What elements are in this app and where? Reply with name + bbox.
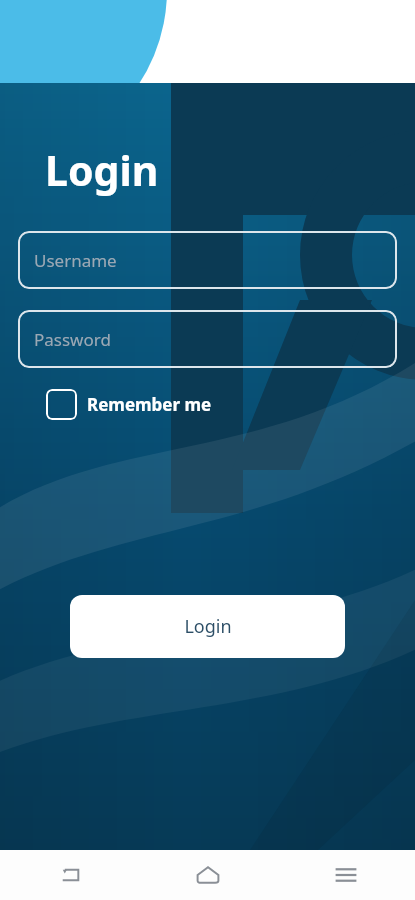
staticText: Login — [184, 614, 232, 639]
button[interactable]: Home — [139, 850, 277, 900]
button[interactable]: Back — [0, 850, 139, 900]
staticText: Password — [34, 328, 111, 351]
button[interactable]: Remember me — [46, 389, 212, 420]
staticText: Remember me — [87, 393, 212, 416]
button[interactable]: Username — [18, 231, 397, 289]
staticText: Login — [45, 142, 159, 198]
button[interactable]: Password — [18, 310, 397, 368]
button[interactable]: Login — [70, 595, 345, 658]
button[interactable]: Menu — [277, 850, 415, 900]
staticText: Username — [34, 249, 117, 272]
